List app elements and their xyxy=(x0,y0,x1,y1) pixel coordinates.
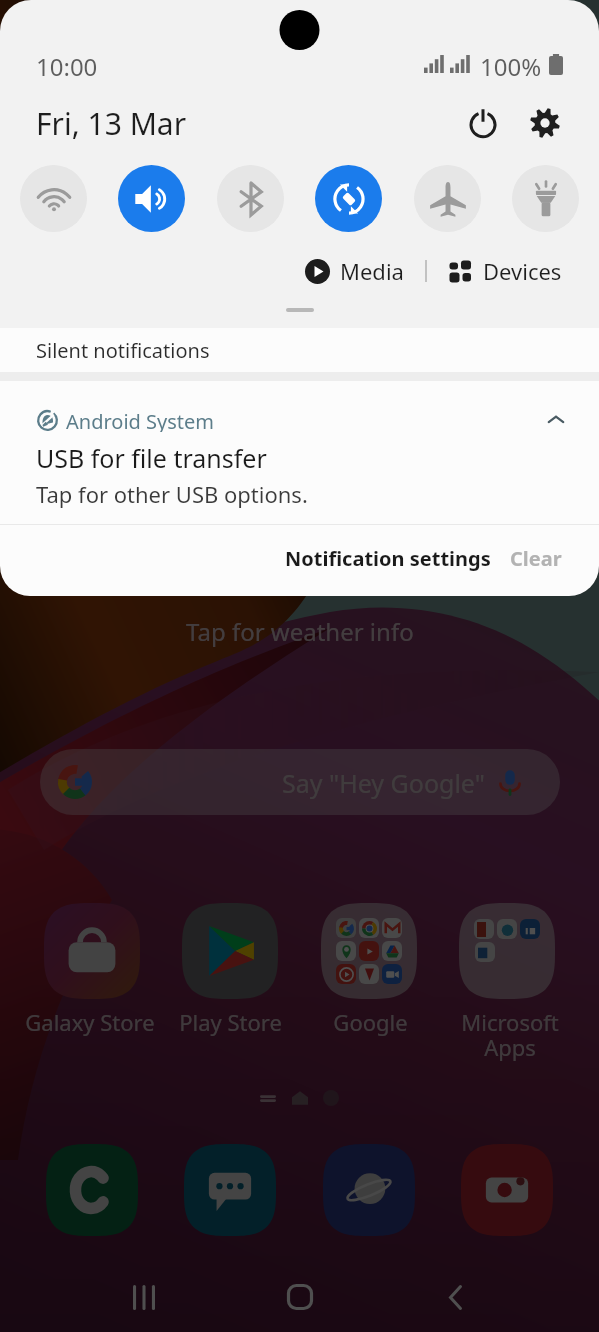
button[interactable]: Messages xyxy=(182,1144,278,1236)
button[interactable]: Devices xyxy=(443,251,567,291)
button[interactable]: Airplane mode xyxy=(414,165,481,232)
button[interactable]: Back xyxy=(420,1262,490,1332)
button[interactable]: Recents xyxy=(109,1262,179,1332)
button[interactable]: Tap for weather info xyxy=(0,615,599,647)
staticText: Tap for other USB options. xyxy=(36,479,308,509)
button[interactable]: Clear xyxy=(490,531,582,586)
staticText: Microsoft Apps xyxy=(461,1007,559,1063)
staticText: 10:00 xyxy=(36,50,98,78)
staticText: Android System xyxy=(66,408,215,432)
button[interactable]: Google xyxy=(321,903,417,999)
staticText: USB for file transfer xyxy=(36,441,267,475)
button[interactable]: Silent notifications xyxy=(0,328,599,372)
button[interactable]: Internet xyxy=(321,1144,417,1236)
button[interactable]: Play Store xyxy=(182,903,278,999)
button[interactable]: Microsoft Apps xyxy=(459,903,555,999)
staticText: Fri, 13 Mar xyxy=(36,103,187,144)
button[interactable]: Auto rotate xyxy=(315,165,382,232)
button[interactable]: Flashlight xyxy=(512,165,579,232)
staticText: Devices xyxy=(483,256,562,286)
button[interactable]: Camera xyxy=(459,1144,555,1236)
button[interactable]: Say "Hey Google" xyxy=(40,749,560,815)
staticText: Google xyxy=(333,1007,408,1037)
staticText: Say "Hey Google" xyxy=(282,766,485,800)
staticText: Play Store xyxy=(179,1007,282,1037)
staticText: Silent notifications xyxy=(36,337,210,364)
button[interactable]: Galaxy Store xyxy=(44,903,140,999)
button[interactable]: Home xyxy=(265,1262,335,1332)
button[interactable]: Notification settings xyxy=(265,531,511,586)
staticText: Tap for weather info xyxy=(186,615,414,647)
staticText: Clear xyxy=(510,545,562,572)
staticText: 100% xyxy=(480,50,542,78)
button[interactable]: Wi-Fi xyxy=(20,165,87,232)
button[interactable]: Media xyxy=(300,251,409,291)
button[interactable]: Bluetooth xyxy=(217,165,284,232)
staticText: Galaxy Store xyxy=(25,1007,155,1037)
staticText: Media xyxy=(340,256,404,286)
button[interactable]: Sound xyxy=(118,165,185,232)
button[interactable]: Android System xyxy=(0,381,599,596)
button[interactable]: Settings xyxy=(521,99,569,147)
button[interactable]: Power off xyxy=(459,99,507,147)
staticText: Notification settings xyxy=(285,545,491,572)
button[interactable]: Phone xyxy=(44,1144,140,1236)
